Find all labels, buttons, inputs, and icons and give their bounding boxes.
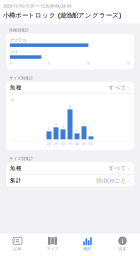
button[interactable]: 記録	[0, 233, 35, 253]
staticText: 10	[86, 61, 90, 66]
staticText: 記録	[13, 246, 21, 251]
staticText: 1	[90, 131, 92, 136]
staticText: i	[121, 237, 123, 245]
staticText: 0	[10, 61, 12, 66]
staticText: ›	[128, 83, 130, 92]
button[interactable]: 統計	[70, 233, 105, 253]
button[interactable]: 魚種	[6, 162, 134, 174]
staticText: 2023/11/9 6:11:39 〜 12:35:49 (06:24:10)	[3, 3, 71, 9]
staticText: 50	[89, 142, 93, 146]
staticText: マップ	[46, 246, 58, 251]
button[interactable]: 魚種	[6, 82, 134, 94]
staticText: 小樽ボートロック (遊漁船アングラーズ)	[3, 11, 121, 19]
staticText: すべて	[108, 164, 126, 172]
staticText: 集計	[10, 177, 22, 184]
button[interactable]: i	[105, 233, 140, 253]
button[interactable]: 集計	[6, 174, 134, 186]
staticText: 8	[69, 104, 71, 109]
staticText: 40	[75, 142, 79, 146]
staticText: ›	[128, 176, 130, 185]
staticText: 魚種	[10, 164, 22, 172]
staticText: 10.0cmごと	[95, 177, 126, 184]
staticText: 20	[47, 142, 51, 146]
staticText: 魚種	[10, 84, 22, 91]
staticText: すべて	[108, 84, 126, 91]
staticText: 5	[48, 61, 50, 66]
staticText: 10	[10, 98, 14, 102]
staticText: 45	[82, 142, 86, 146]
staticText: アブラコ	[10, 37, 26, 43]
staticText: 35	[68, 142, 72, 146]
staticText: 25	[54, 142, 58, 146]
staticText: ›	[128, 164, 130, 172]
button[interactable]: マップ	[35, 233, 70, 253]
staticText: 30	[61, 142, 65, 146]
staticText: 3	[83, 121, 85, 126]
staticText: サイズ別集計	[9, 75, 33, 81]
staticText: 2	[48, 126, 50, 131]
staticText: ソイ	[10, 49, 18, 55]
staticText: 設定	[118, 246, 126, 251]
staticText: 1	[76, 128, 78, 133]
staticText: 魚種別集計	[9, 27, 29, 33]
staticText: 統計	[83, 246, 91, 251]
staticText: 2	[62, 124, 64, 129]
staticText: 3	[55, 122, 57, 127]
staticText: 15	[126, 61, 130, 66]
staticText: サイズ別集計	[9, 156, 33, 161]
